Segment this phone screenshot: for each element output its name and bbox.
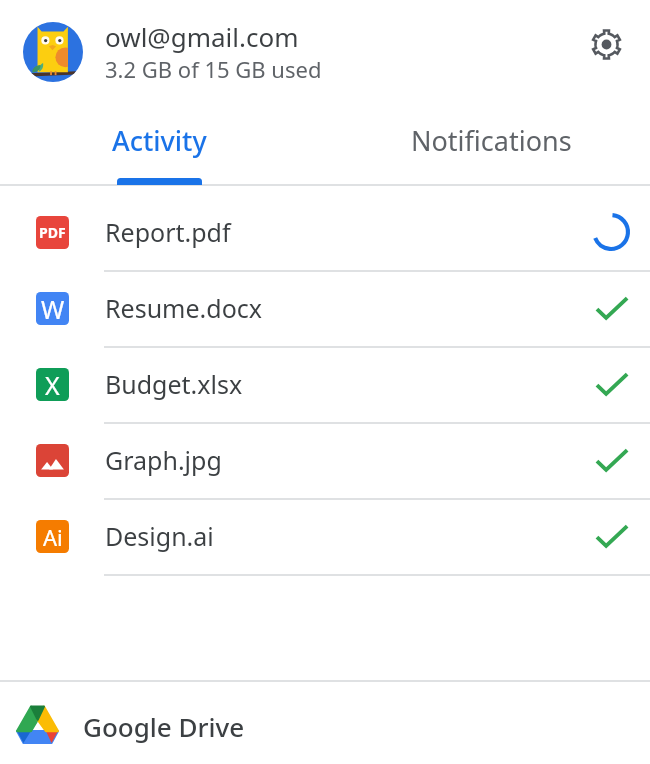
button[interactable]: Graph.jpg (0, 424, 650, 500)
staticText: PDF (39, 223, 66, 242)
staticText: owl@gmail.com (105, 19, 299, 54)
button[interactable]: W (0, 272, 650, 348)
button[interactable]: Activity (0, 98, 322, 185)
staticText: W (41, 292, 65, 325)
button[interactable]: Settings (582, 20, 630, 68)
staticText: Design.ai (105, 519, 593, 553)
staticText: Graph.jpg (105, 443, 593, 477)
staticText: Report.pdf (105, 215, 592, 249)
staticText: Activity (112, 122, 207, 159)
button[interactable]: X (0, 348, 650, 424)
button[interactable]: PDF (0, 196, 650, 272)
button[interactable]: Notifications (329, 98, 650, 185)
staticText: 3.2 GB of 15 GB used (105, 54, 322, 84)
staticText: Notifications (411, 122, 572, 159)
staticText: Google Drive (83, 709, 245, 744)
staticText: Resume.docx (105, 291, 593, 325)
staticText: X (45, 368, 60, 401)
staticText: Ai (43, 522, 63, 552)
button[interactable] (0, 682, 650, 764)
staticText: Budget.xlsx (105, 367, 593, 401)
button[interactable]: Ai (0, 500, 650, 576)
